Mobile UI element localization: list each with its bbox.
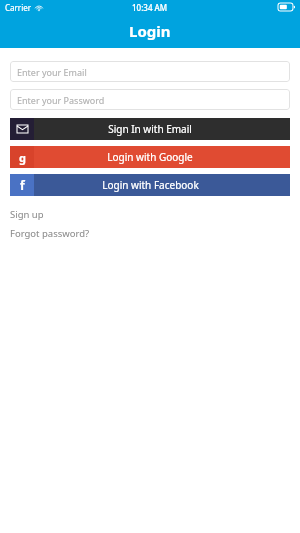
button[interactable]: Sign up — [10, 208, 44, 221]
button[interactable]: Enter your Email — [10, 61, 290, 82]
staticText: f — [20, 177, 25, 193]
button[interactable]: Email — [10, 118, 290, 140]
staticText: Login — [129, 21, 171, 41]
staticText: Sign In with Email — [108, 122, 192, 136]
button[interactable]: Enter your Password — [10, 89, 290, 110]
staticText: Sign up — [10, 208, 44, 221]
staticText: Enter your Password — [17, 94, 105, 106]
other: Google — [19, 150, 26, 165]
staticText: Login with Google — [107, 150, 193, 164]
staticText: Enter your Email — [17, 66, 87, 78]
staticText: Forgot password? — [10, 227, 90, 240]
other: Email — [17, 125, 28, 133]
staticText: Carrier — [5, 2, 32, 13]
staticText: g — [19, 150, 26, 165]
other: Facebook — [20, 177, 25, 193]
staticText: 10:34 AM — [132, 2, 168, 13]
button[interactable]: Forgot password? — [10, 227, 90, 240]
button[interactable]: Google — [10, 146, 290, 168]
button[interactable]: Facebook — [10, 174, 290, 196]
staticText: Login with Facebook — [102, 178, 199, 192]
